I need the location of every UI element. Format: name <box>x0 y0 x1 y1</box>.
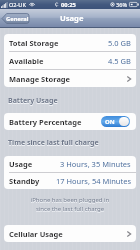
button[interactable]: Usage <box>4 156 136 172</box>
button[interactable]: Standby <box>4 173 136 189</box>
staticText: iPhone has been plugged in since the las… <box>8 197 132 213</box>
staticText: Cellular Usage <box>9 229 63 239</box>
button[interactable]: General <box>2 13 29 24</box>
staticText: Time since last full charge <box>8 138 99 148</box>
staticText: Available <box>9 56 44 66</box>
staticText: 4.5 GB <box>108 56 131 66</box>
button[interactable]: Cellular Usage <box>4 225 136 242</box>
staticText: Manage Storage <box>9 74 71 84</box>
staticText: iPhone has been plugged in since the las… <box>8 196 132 212</box>
staticText: Battery Percentage <box>9 117 82 127</box>
staticText: Battery Usage <box>8 96 58 106</box>
staticText: 3 Hours, 35 Minutes <box>60 159 131 169</box>
staticText: Battery Usage <box>8 97 58 107</box>
staticText: 00:25 <box>61 1 76 9</box>
staticText: General <box>6 15 29 23</box>
button[interactable]: Battery Percentage on <box>101 116 130 127</box>
staticText: Total Storage <box>9 38 59 48</box>
button[interactable]: Manage Storage <box>4 70 136 87</box>
staticText: 17 Hours, 54 Minutes <box>56 176 131 186</box>
staticText: Usage <box>9 159 33 169</box>
staticText: Time since last full charge <box>8 139 99 149</box>
staticText: 36% <box>116 1 128 9</box>
button[interactable]: Available <box>4 52 136 69</box>
staticText: Standby <box>9 176 40 186</box>
staticText: Usage <box>60 13 84 23</box>
staticText: ON <box>105 118 115 126</box>
staticText: O2-UK <box>9 1 26 9</box>
staticText: 5.0 GB <box>108 38 131 48</box>
button[interactable]: Total Storage <box>4 34 136 51</box>
button[interactable]: Battery Percentage <box>4 113 136 130</box>
